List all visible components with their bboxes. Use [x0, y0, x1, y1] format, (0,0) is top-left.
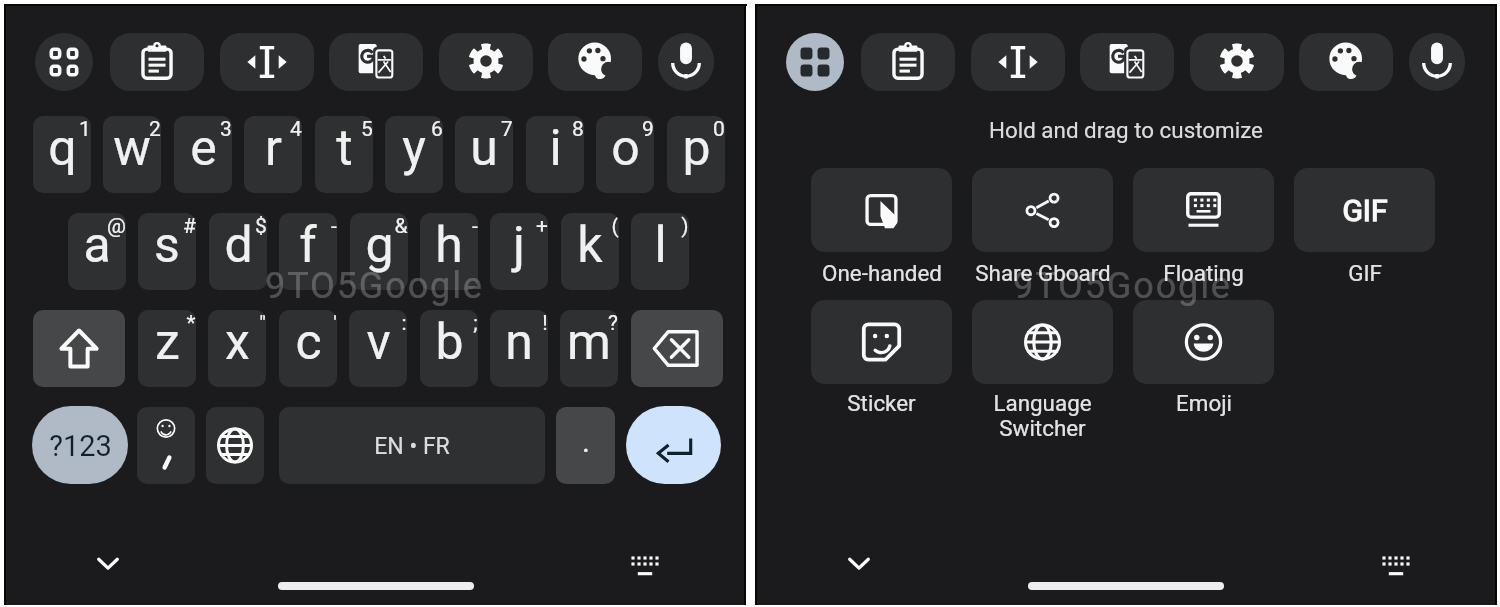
button[interactable]: a: [68, 213, 126, 290]
button[interactable]: n: [490, 310, 548, 387]
button[interactable]: Text editing: [971, 33, 1065, 91]
button[interactable]: Toolbar: [786, 33, 844, 91]
staticText: j: [513, 216, 525, 275]
button[interactable]: r: [244, 116, 302, 193]
button[interactable]: Emoji: [137, 407, 195, 484]
staticText: -: [331, 214, 337, 239]
button[interactable]: Clipboard: [861, 33, 955, 91]
button[interactable]: Hide keyboard: [90, 546, 126, 582]
staticText: +: [536, 214, 548, 239]
button[interactable]: d: [209, 213, 267, 290]
button[interactable]: g: [350, 213, 408, 290]
button[interactable]: Enter: [626, 406, 721, 484]
staticText: -: [472, 214, 478, 239]
button[interactable]: Text editing: [220, 33, 314, 91]
button[interactable]: Language: [206, 407, 264, 484]
staticText: 6: [431, 117, 443, 142]
button[interactable]: Themes: [548, 33, 642, 91]
staticText: #: [183, 214, 196, 239]
staticText: s: [154, 216, 180, 275]
button[interactable]: p: [667, 116, 725, 193]
staticText: 3: [220, 117, 232, 142]
staticText: p: [682, 119, 711, 178]
staticText: ': [333, 311, 337, 336]
staticText: .: [582, 424, 590, 459]
button[interactable]: Emoji: [1133, 300, 1274, 384]
staticText: a: [83, 216, 111, 275]
button[interactable]: s: [138, 213, 196, 290]
button[interactable]: One-handed: [811, 168, 952, 252]
staticText: 5: [361, 117, 373, 142]
staticText: n: [505, 313, 533, 372]
button[interactable]: Translate: [1080, 33, 1174, 91]
button[interactable]: ?123: [32, 406, 128, 484]
button[interactable]: u: [455, 116, 513, 193]
button[interactable]: Toolbar: [35, 33, 93, 91]
staticText: y: [402, 119, 426, 178]
button[interactable]: w: [103, 116, 161, 193]
button[interactable]: Share Gboard: [972, 168, 1113, 252]
staticText: GIF: [1342, 193, 1388, 228]
staticText: 7: [501, 117, 513, 142]
button[interactable]: Switch keyboard: [625, 547, 665, 583]
staticText: e: [190, 119, 217, 178]
button[interactable]: Clipboard: [110, 33, 204, 91]
button[interactable]: e: [174, 116, 232, 193]
button[interactable]: Backspace: [631, 310, 723, 387]
button[interactable]: v: [349, 310, 407, 387]
staticText: w: [113, 119, 151, 178]
staticText: u: [470, 119, 498, 178]
staticText: *: [186, 311, 196, 336]
staticText: d: [224, 216, 253, 275]
staticText: $: [255, 214, 267, 239]
staticText: k: [577, 216, 603, 275]
button[interactable]: f: [279, 213, 337, 290]
staticText: h: [435, 216, 463, 275]
button[interactable]: Space: [279, 407, 545, 484]
button[interactable]: c: [279, 310, 337, 387]
button[interactable]: Language Switcher: [972, 300, 1113, 384]
button[interactable]: Switch keyboard: [1376, 547, 1416, 583]
staticText: ?123: [49, 429, 112, 463]
button[interactable]: Floating: [1133, 168, 1274, 252]
button[interactable]: Shift: [33, 310, 125, 387]
button[interactable]: Settings: [439, 33, 533, 91]
staticText: Emoji: [1176, 390, 1232, 416]
button[interactable]: y: [385, 116, 443, 193]
button[interactable]: Voice input: [1409, 33, 1465, 91]
button[interactable]: j: [490, 213, 548, 290]
button[interactable]: .: [556, 407, 615, 484]
button[interactable]: GIF: [1294, 168, 1435, 252]
button[interactable]: q: [33, 116, 91, 193]
button[interactable]: m: [560, 310, 618, 387]
button[interactable]: Themes: [1299, 33, 1393, 91]
button[interactable]: Voice input: [658, 33, 714, 91]
button[interactable]: b: [420, 310, 478, 387]
staticText: ": [259, 311, 266, 336]
button[interactable]: t: [315, 116, 373, 193]
button[interactable]: i: [526, 116, 584, 193]
button[interactable]: Sticker: [811, 300, 952, 384]
staticText: t: [336, 119, 353, 178]
staticText: ;: [473, 311, 478, 336]
staticText: !: [542, 311, 548, 336]
staticText: x: [225, 313, 250, 372]
staticText: f: [299, 216, 317, 275]
button[interactable]: k: [561, 213, 619, 290]
button[interactable]: o: [596, 116, 654, 193]
staticText: One-handed: [822, 260, 942, 286]
staticText: Sticker: [847, 390, 916, 416]
button[interactable]: Settings: [1190, 33, 1284, 91]
button[interactable]: l: [631, 213, 689, 290]
button[interactable]: Translate: [329, 33, 423, 91]
staticText: 9: [642, 117, 654, 142]
button[interactable]: Hide keyboard: [841, 546, 877, 582]
staticText: 9TO5Google: [1013, 265, 1232, 307]
staticText: r: [265, 119, 282, 178]
button[interactable]: h: [420, 213, 478, 290]
staticText: 1: [79, 117, 91, 142]
staticText: ): [681, 214, 689, 239]
button[interactable]: z: [138, 310, 196, 387]
staticText: EN • FR: [374, 433, 450, 460]
button[interactable]: x: [208, 310, 266, 387]
